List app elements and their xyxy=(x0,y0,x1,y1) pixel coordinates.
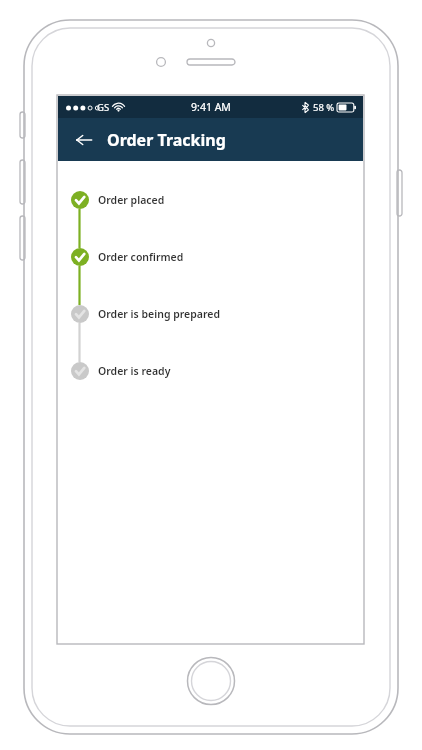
button[interactable]: Order confirmed xyxy=(58,248,363,305)
staticText: Order confirmed xyxy=(98,250,184,264)
staticText: Order placed xyxy=(98,193,165,207)
staticText: 9:41 AM xyxy=(191,100,231,114)
button[interactable]: Order placed xyxy=(58,191,363,248)
button[interactable]: Order is being prepared xyxy=(58,305,363,362)
staticText: Order Tracking xyxy=(107,129,226,151)
staticText: GS xyxy=(97,101,110,114)
button[interactable]: Order is ready xyxy=(58,362,363,380)
staticText: Order is being prepared xyxy=(98,307,221,321)
staticText: Order is ready xyxy=(98,364,171,378)
button[interactable]: Back xyxy=(71,127,97,153)
staticText: 58 % xyxy=(313,101,335,114)
